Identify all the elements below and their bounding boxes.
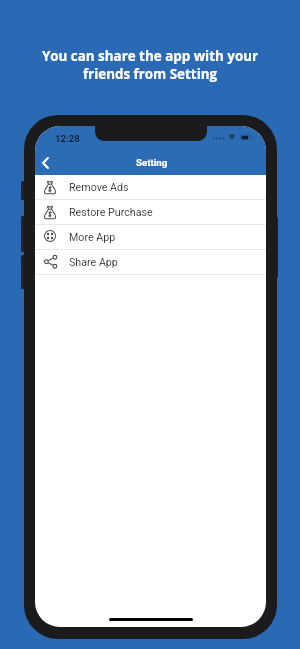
staticText: Setting: [136, 157, 168, 168]
staticText: More App: [69, 231, 116, 244]
staticText: Share App: [69, 256, 118, 269]
button[interactable]: Share App: [35, 250, 266, 275]
staticText: Remove Ads: [69, 181, 129, 194]
button[interactable]: Back: [35, 150, 59, 174]
staticText: You can share the app with your friends …: [0, 47, 300, 83]
staticText: Restore Purchase: [69, 206, 153, 219]
button[interactable]: More App: [35, 225, 266, 250]
button[interactable]: Restore Purchase: [35, 200, 266, 225]
staticText: 12:28: [55, 133, 80, 144]
button[interactable]: Remove Ads: [35, 175, 266, 200]
